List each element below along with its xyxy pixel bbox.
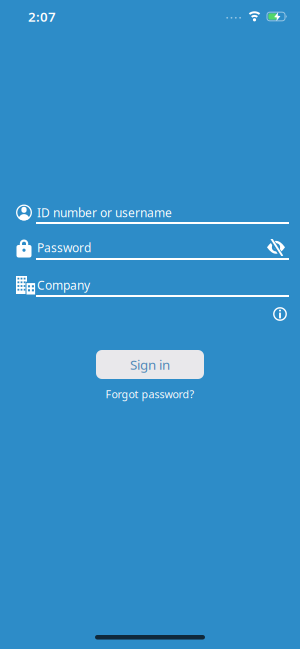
staticText: 2:07 (28, 8, 56, 25)
button[interactable]: Company (0, 275, 300, 297)
button[interactable]: Information (273, 307, 287, 321)
button[interactable]: Password (0, 237, 300, 260)
staticText: Company (37, 277, 90, 293)
button[interactable]: ID number or username (0, 203, 300, 224)
button[interactable]: Sign in (96, 350, 204, 379)
button[interactable]: Forgot password? (105, 387, 194, 401)
staticText: ID number or username (37, 204, 172, 220)
staticText: Password (37, 239, 91, 255)
staticText: Forgot password? (105, 387, 194, 401)
staticText: Sign in (130, 356, 170, 373)
button[interactable]: Show password (267, 239, 285, 256)
